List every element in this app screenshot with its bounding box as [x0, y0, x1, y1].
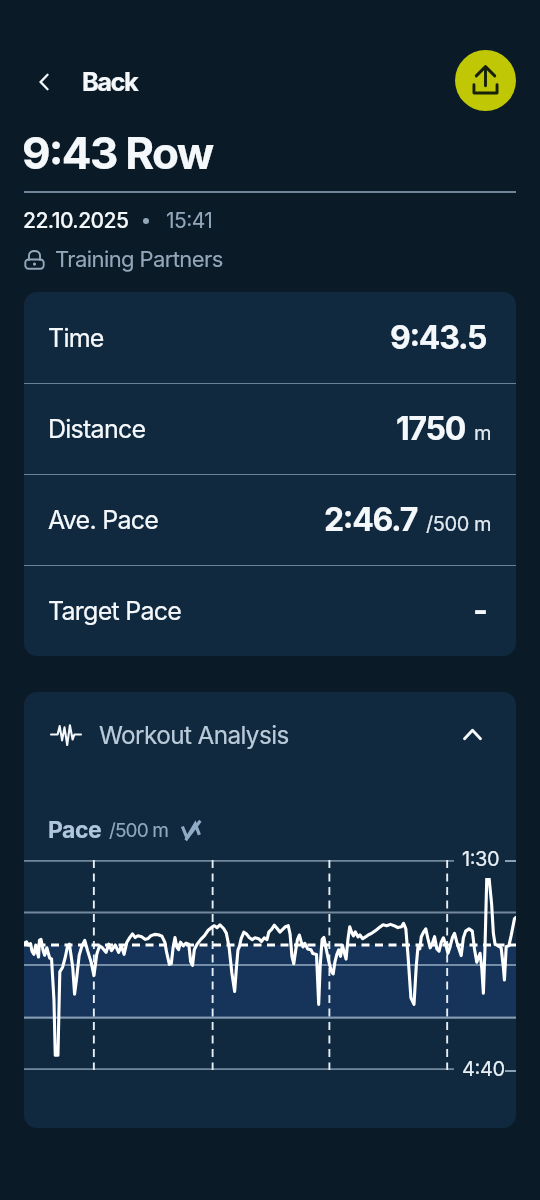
- staticText: 1:30: [462, 847, 500, 871]
- staticText: Time: [48, 323, 104, 353]
- staticText: Distance: [48, 414, 146, 444]
- staticText: 9:43 Row: [22, 126, 213, 179]
- other: Collapse workout analysis: [463, 727, 482, 742]
- staticText: Training Partners: [55, 246, 223, 273]
- button[interactable]: Target Pace: [24, 565, 516, 656]
- staticText: 9:43.5: [390, 318, 487, 357]
- button[interactable]: Training Partners: [23, 246, 223, 273]
- other: Toggle pace graph: [181, 819, 204, 841]
- staticText: 15:41: [166, 208, 213, 233]
- staticText: 4:40: [462, 1057, 505, 1081]
- staticText: Ave. Pace: [48, 505, 159, 535]
- staticText: /500 m: [426, 512, 492, 536]
- staticText: Workout Analysis: [99, 720, 289, 749]
- staticText: -: [473, 591, 487, 630]
- staticText: /500 m: [109, 819, 168, 842]
- staticText: Pace: [48, 816, 102, 844]
- button[interactable]: Ave. Pace: [24, 474, 516, 565]
- staticText: Back: [82, 66, 138, 97]
- button[interactable]: Back: [37, 64, 146, 99]
- staticText: m: [474, 421, 492, 445]
- button[interactable]: Distance: [24, 383, 516, 474]
- button[interactable]: Share workout: [455, 50, 516, 111]
- button[interactable]: Workout Analysis: [24, 692, 516, 776]
- button[interactable]: Pace: [48, 816, 204, 844]
- staticText: 22.10.2025: [23, 208, 129, 233]
- staticText: 2:46.7: [324, 500, 417, 539]
- button[interactable]: Time: [24, 292, 516, 383]
- staticText: 1750: [396, 409, 465, 448]
- staticText: Target Pace: [48, 596, 182, 626]
